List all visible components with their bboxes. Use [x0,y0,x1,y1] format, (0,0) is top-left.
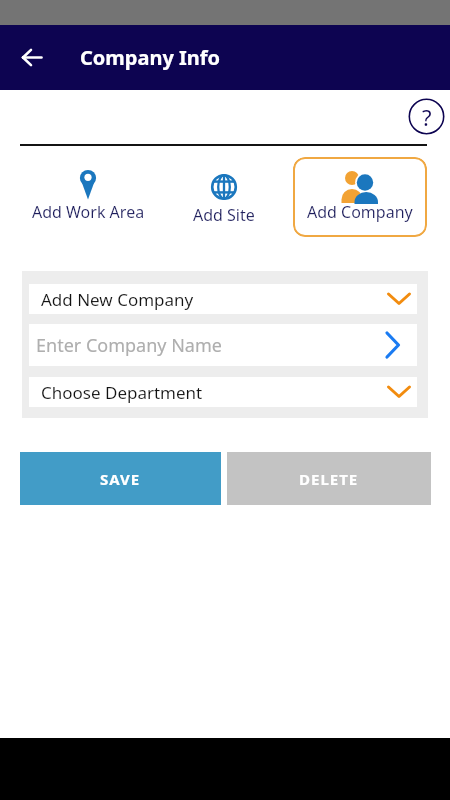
button[interactable]: Add Company [293,157,427,237]
button[interactable]: ? [408,98,445,135]
button[interactable]: Add Site [168,158,280,230]
staticText: Enter Company Name [36,333,222,358]
staticText: DELETE [299,469,359,489]
staticText: Add Company [307,201,413,223]
button[interactable]: DELETE [227,452,431,505]
staticText: ? [422,102,432,132]
button[interactable]: Enter Company Name [29,324,417,366]
button[interactable]: SAVE [20,452,221,505]
staticText: Choose Department [41,381,203,404]
button[interactable]: Add Work Area [24,158,152,226]
button[interactable] [12,37,52,77]
button[interactable]: Add New Company [29,284,417,314]
staticText: Add New Company [41,288,194,311]
staticText: Add Site [193,204,255,226]
staticText: Company Info [80,44,221,71]
staticText: SAVE [100,469,141,489]
button[interactable]: Choose Department [29,377,417,407]
staticText: Add Work Area [32,201,145,223]
